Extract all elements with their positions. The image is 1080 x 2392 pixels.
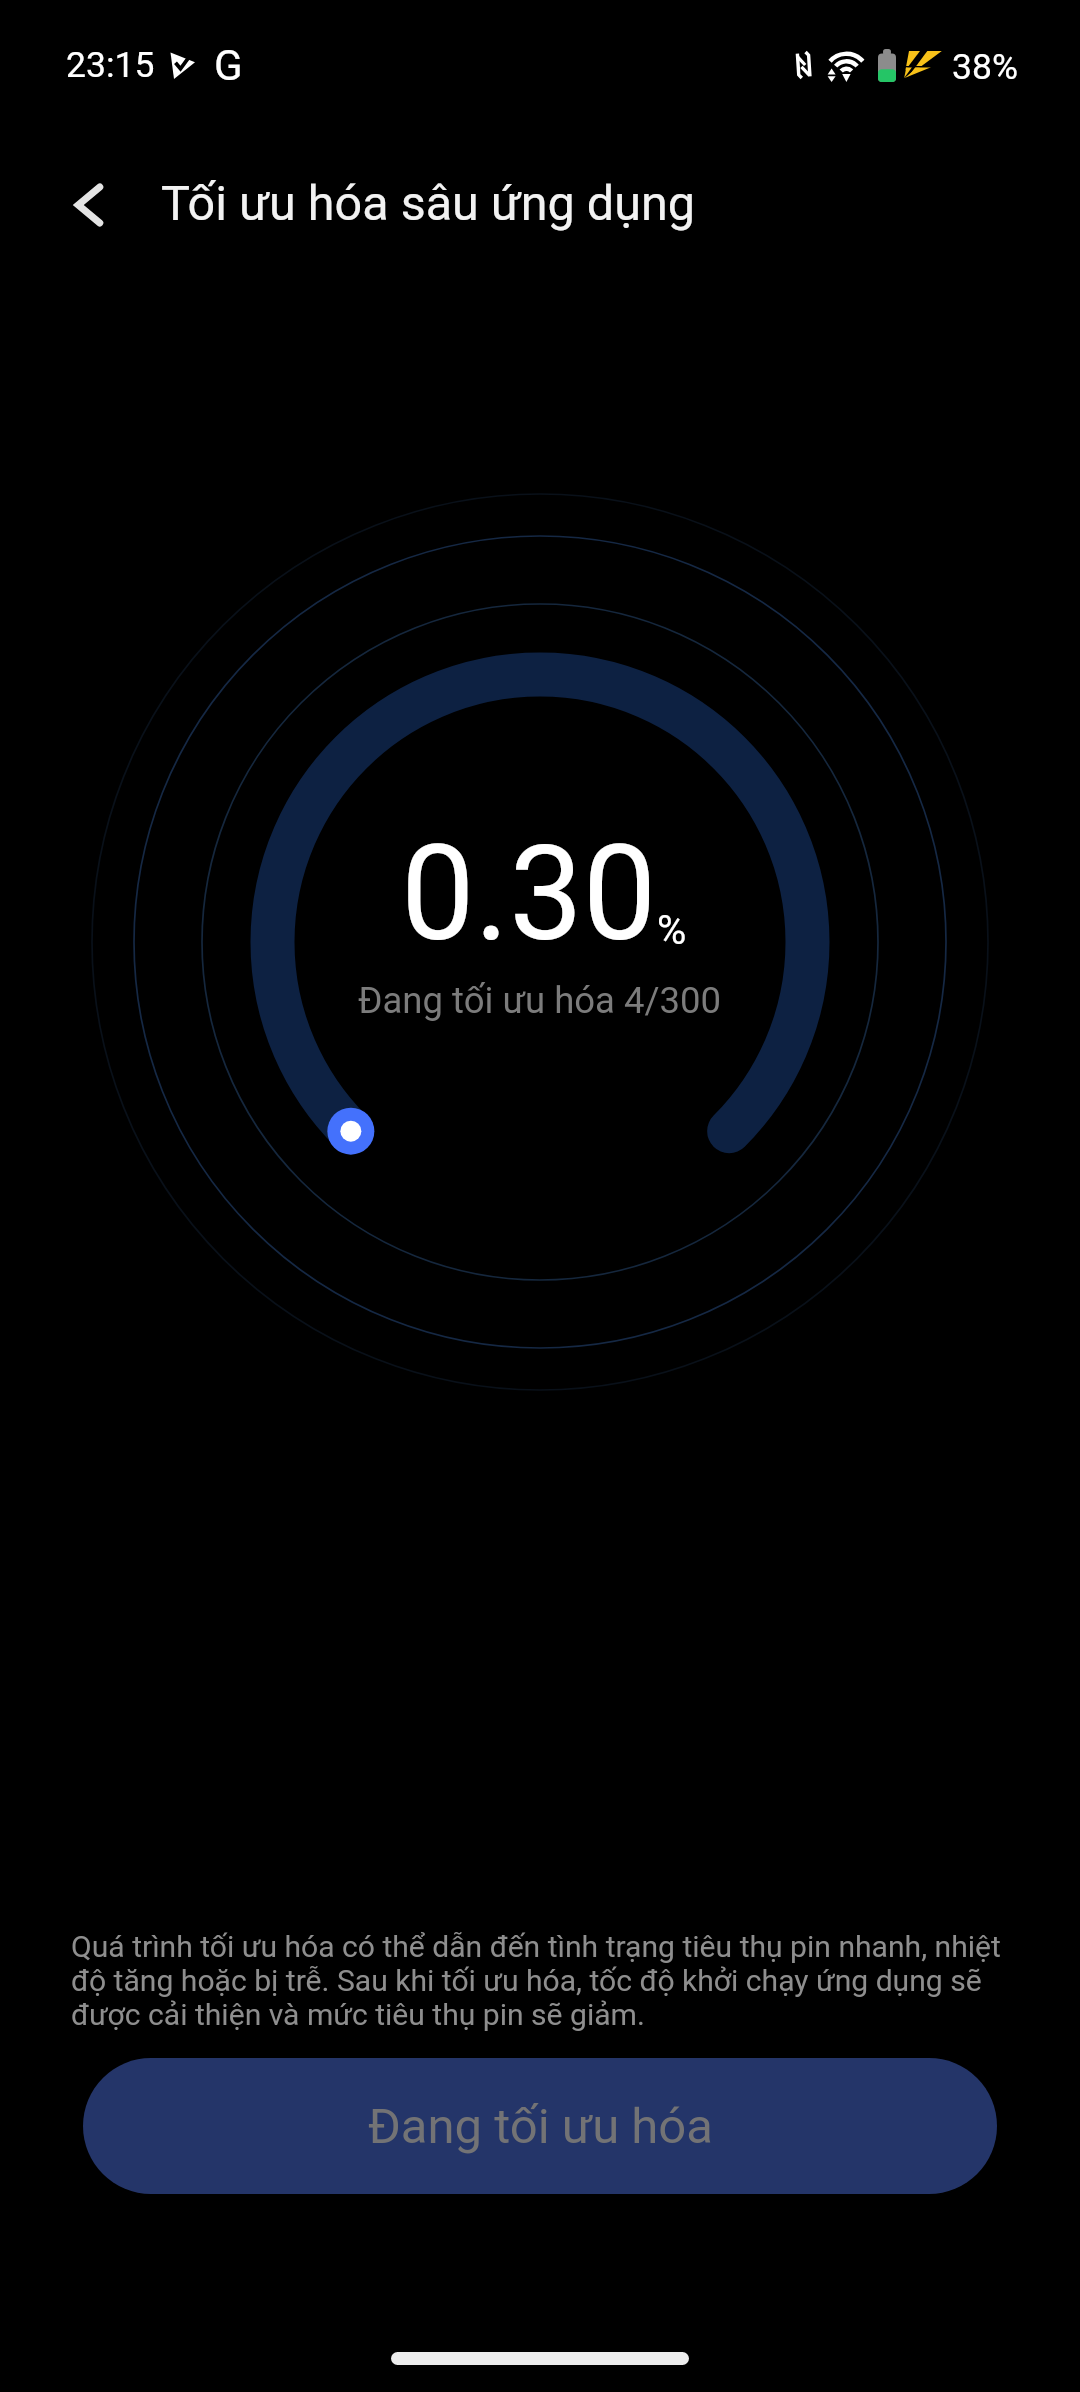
button[interactable]: Đang tối ưu hóa [83,2058,997,2194]
staticText: 38% [952,46,1018,88]
staticText: Tối ưu hóa sâu ứng dụng [161,175,695,232]
staticText: 0.30 [401,817,657,971]
staticText: % [657,907,687,954]
staticText: 23:15 [66,44,155,86]
button[interactable]: Back [43,160,135,252]
staticText: Quá trình tối ưu hóa có thể dẫn đến tình… [71,1930,1021,2032]
staticText: G [214,41,243,90]
staticText: Đang tối ưu hóa 4/300 [358,979,722,1022]
staticText: Đang tối ưu hóa [368,2098,713,2155]
